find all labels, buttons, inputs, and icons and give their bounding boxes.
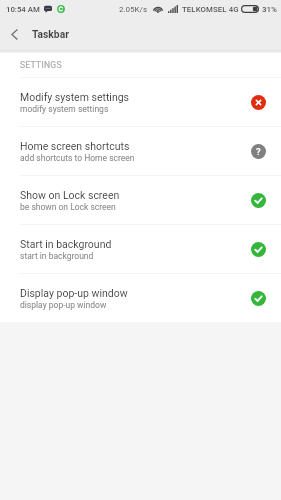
staticText: Display pop-up window bbox=[20, 287, 128, 299]
staticText: 10:54 AM bbox=[6, 5, 40, 14]
button[interactable]: Show on Lock screen bbox=[0, 176, 281, 224]
staticText: add shortcuts to Home screen bbox=[20, 153, 135, 163]
staticText: TELKOMSEL 4G bbox=[182, 5, 239, 14]
staticText: Modify system settings bbox=[20, 91, 129, 103]
button[interactable]: Home screen shortcuts bbox=[0, 127, 281, 175]
button[interactable]: Start in background bbox=[0, 225, 281, 273]
button[interactable]: Display pop-up window bbox=[0, 274, 281, 322]
staticText: SETTINGS bbox=[20, 60, 62, 70]
staticText: display pop-up window bbox=[20, 300, 107, 310]
staticText: Home screen shortcuts bbox=[20, 140, 130, 152]
staticText: Start in background bbox=[20, 238, 112, 250]
button[interactable]: Modify system settings bbox=[0, 78, 281, 126]
staticText: 31% bbox=[262, 5, 277, 14]
staticText: modify system settings bbox=[20, 104, 109, 114]
staticText: start in background bbox=[20, 251, 94, 261]
button[interactable]: Back bbox=[0, 18, 28, 50]
staticText: Show on Lock screen bbox=[20, 189, 120, 201]
staticText: Taskbar bbox=[32, 28, 69, 40]
staticText: be shown on Lock screen bbox=[20, 202, 116, 212]
staticText: ? bbox=[256, 146, 261, 157]
staticText: 2.05K/s bbox=[119, 5, 148, 14]
